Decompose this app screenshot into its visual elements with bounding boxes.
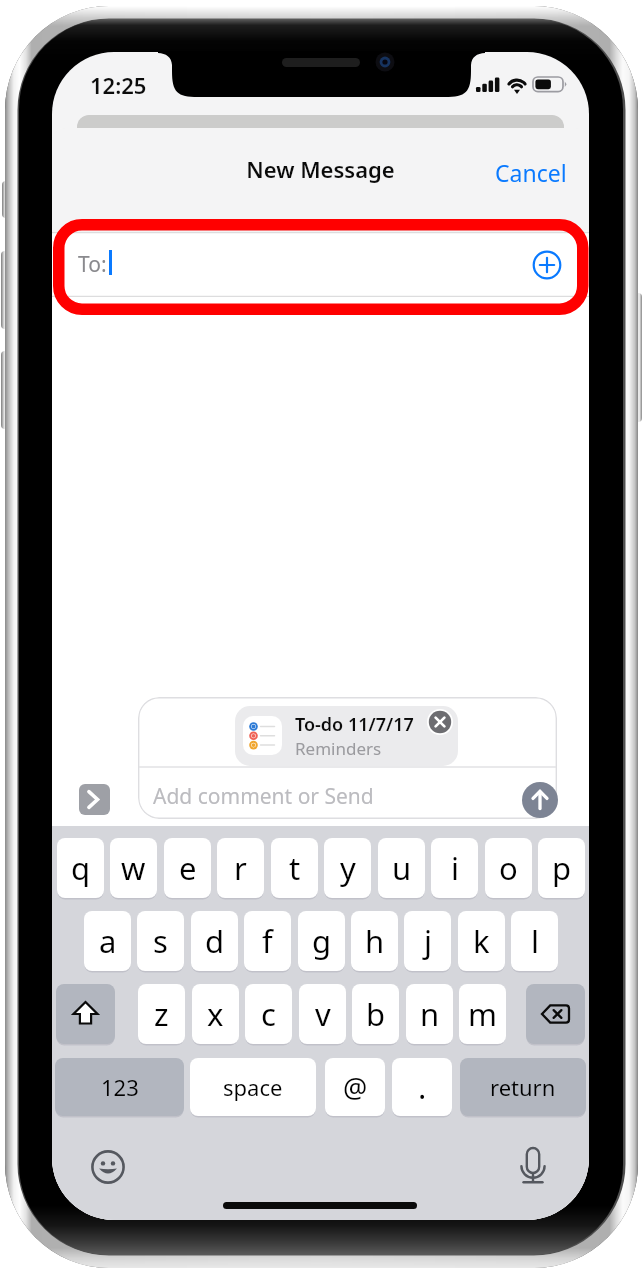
button[interactable]: . (392, 1058, 452, 1116)
button[interactable]: y (324, 838, 371, 898)
button[interactable]: 123 (55, 1058, 184, 1116)
staticText: z (154, 993, 169, 1035)
button[interactable]: @ (325, 1058, 385, 1116)
staticText: To-do 11/7/17 (295, 712, 414, 737)
button[interactable]: return (460, 1058, 586, 1116)
staticText: j (424, 920, 432, 962)
button[interactable]: space (190, 1058, 316, 1116)
button[interactable]: v (299, 984, 346, 1044)
button[interactable]: To-do 11/7/17 (235, 706, 458, 766)
staticText: p (552, 847, 572, 889)
staticText: o (499, 847, 518, 889)
staticText: return (490, 1072, 556, 1102)
button[interactable]: w (110, 838, 157, 898)
button[interactable]: c (245, 984, 292, 1044)
staticText: Add comment or Send (153, 782, 374, 811)
button[interactable]: a (84, 911, 131, 971)
button[interactable]: f (244, 911, 291, 971)
staticText: f (262, 920, 273, 962)
button[interactable]: q (57, 838, 104, 898)
button[interactable]: x (192, 984, 239, 1044)
staticText: 123 (101, 1072, 139, 1102)
staticText: y (340, 847, 356, 889)
staticText: w (121, 847, 146, 889)
staticText: i (451, 847, 459, 889)
staticText: e (179, 847, 197, 889)
staticText: u (392, 847, 412, 889)
staticText: t (289, 847, 301, 889)
staticText: n (420, 993, 440, 1035)
button[interactable]: h (351, 911, 398, 971)
staticText: Cancel (495, 157, 567, 188)
button[interactable]: Show apps (79, 784, 110, 815)
staticText: @ (343, 1069, 368, 1106)
button[interactable]: l (511, 911, 558, 971)
staticText: m (468, 993, 497, 1035)
staticText: To: (78, 250, 107, 279)
staticText: k (473, 920, 490, 962)
staticText: h (365, 920, 385, 962)
button[interactable]: k (458, 911, 505, 971)
staticText: g (312, 920, 332, 962)
button[interactable]: Cancel (480, 152, 589, 192)
staticText: space (223, 1072, 283, 1102)
button[interactable]: Emoji keyboard (86, 1145, 130, 1189)
staticText: c (261, 993, 276, 1035)
staticText: a (99, 920, 117, 962)
button[interactable]: Send (522, 782, 558, 818)
button[interactable]: Remove attachment (426, 708, 454, 736)
staticText: b (366, 993, 386, 1035)
staticText: s (153, 920, 168, 962)
staticText: r (234, 847, 247, 889)
button[interactable]: To: (52, 232, 589, 297)
button[interactable]: i (431, 838, 478, 898)
button[interactable]: Add contact (525, 243, 569, 287)
staticText: q (71, 847, 91, 889)
button[interactable]: b (352, 984, 399, 1044)
button[interactable]: d (191, 911, 238, 971)
button[interactable]: z (138, 984, 185, 1044)
staticText: 12:25 (90, 70, 147, 100)
button[interactable]: Dictation (511, 1143, 555, 1187)
staticText: . (418, 1066, 427, 1108)
staticText: Reminders (295, 737, 382, 760)
button[interactable]: r (217, 838, 264, 898)
button[interactable] (526, 984, 585, 1044)
staticText: d (205, 920, 225, 962)
button[interactable]: j (404, 911, 451, 971)
button[interactable]: m (459, 984, 506, 1044)
staticText: l (531, 920, 539, 962)
button[interactable]: n (406, 984, 453, 1044)
button[interactable]: t (271, 838, 318, 898)
button[interactable]: g (298, 911, 345, 971)
staticText: v (315, 993, 331, 1035)
button[interactable] (56, 984, 115, 1044)
button[interactable]: u (378, 838, 425, 898)
staticText: New Message (52, 154, 589, 184)
button[interactable]: p (538, 838, 585, 898)
button[interactable]: o (485, 838, 532, 898)
button[interactable]: s (137, 911, 184, 971)
staticText: x (207, 993, 224, 1035)
button[interactable]: e (164, 838, 211, 898)
